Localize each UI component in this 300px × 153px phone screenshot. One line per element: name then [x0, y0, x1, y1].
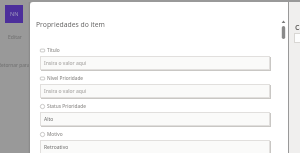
other: Scroll [278, 16, 288, 46]
staticText: Editar [8, 34, 22, 41]
staticText: Propriedades do item [36, 20, 105, 29]
button[interactable]: Insira o valor aqui [40, 56, 270, 70]
staticText: Insira o valor aqui [44, 88, 87, 95]
button[interactable] [294, 33, 300, 43]
staticText: NN [10, 10, 19, 18]
staticText: Retornar para o [0, 62, 29, 69]
button[interactable]: Retroativo [40, 140, 270, 153]
staticText: Status Prioridade [47, 103, 86, 110]
button[interactable]: NN [5, 5, 23, 23]
staticText: Motivo [47, 131, 63, 138]
staticText: Retroativo [44, 144, 69, 151]
staticText: Alto [44, 116, 54, 123]
staticText: Nível Prioridade [47, 75, 84, 82]
button[interactable]: Alto [40, 112, 270, 126]
button[interactable]: Insira o valor aqui [40, 84, 270, 98]
staticText: Insira o valor aqui [44, 60, 87, 67]
button[interactable]: Editar [2, 31, 28, 43]
staticText: Cap [295, 23, 300, 33]
staticText: Título [47, 47, 60, 54]
button[interactable]: Retornar para o [0, 59, 30, 71]
